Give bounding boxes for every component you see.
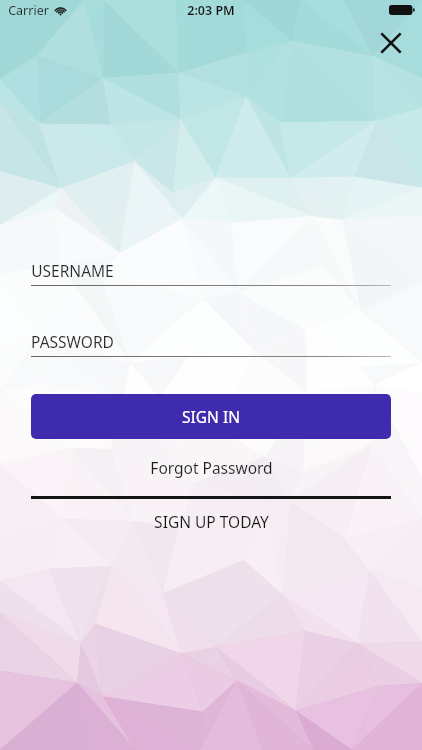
button[interactable]: Close [370, 22, 412, 64]
staticText: Forgot Password [150, 457, 273, 478]
staticText: 2:03 PM [187, 2, 235, 19]
staticText: SIGN UP TODAY [154, 511, 269, 532]
button[interactable]: SIGN UP TODAY [31, 506, 391, 536]
button[interactable]: USERNAME [31, 255, 391, 286]
button[interactable]: Forgot Password [31, 449, 391, 485]
staticText: SIGN IN [182, 406, 240, 427]
staticText: PASSWORD [31, 331, 114, 352]
button[interactable]: SIGN IN [31, 394, 391, 439]
button[interactable]: PASSWORD [31, 326, 391, 357]
staticText: Carrier [8, 2, 49, 19]
staticText: USERNAME [31, 260, 114, 281]
